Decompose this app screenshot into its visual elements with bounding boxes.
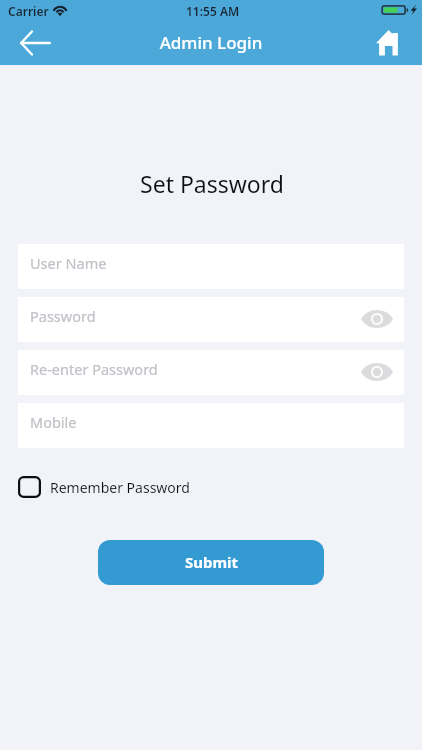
staticText: Re-enter Password [30,359,158,379]
button[interactable]: Password [18,297,404,342]
button[interactable]: Re-enter Password [18,350,404,395]
staticText: Admin Login [0,31,422,54]
button[interactable]: User Name [18,244,404,289]
staticText: User Name [30,253,107,273]
staticText: 11:55 AM [186,3,240,19]
button[interactable]: Back [5,26,65,60]
button[interactable]: Show password [360,356,394,390]
staticText: Password [30,306,96,326]
staticText: Mobile [30,412,77,432]
button[interactable]: Mobile [18,403,404,448]
button[interactable]: Show password [360,303,394,337]
button[interactable]: Remember Password [18,476,190,498]
staticText: Submit [185,552,239,572]
button[interactable]: Home [368,24,408,60]
staticText: Carrier [8,3,49,19]
staticText: Remember Password [50,478,190,497]
staticText: Set Password [1,168,422,199]
button[interactable]: Submit [98,540,324,585]
